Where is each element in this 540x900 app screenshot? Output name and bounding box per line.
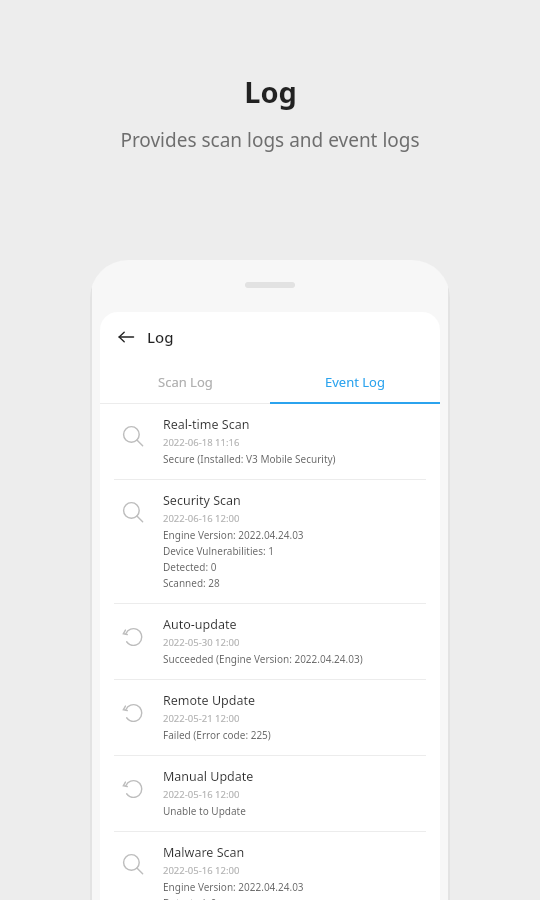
staticText: 2022-05-16 12:00 xyxy=(163,788,240,801)
staticText: Scanned: 28 xyxy=(163,576,220,590)
button[interactable]: Remote Update xyxy=(100,680,440,755)
staticText: Scan Log xyxy=(158,373,213,391)
staticText: Engine Version: 2022.04.24.03 xyxy=(163,528,304,542)
staticText: Device Vulnerabilities: 1 xyxy=(163,544,274,558)
staticText: Detected: 0 xyxy=(163,896,217,900)
staticText: 2022-05-30 12:00 xyxy=(163,636,240,649)
staticText: Auto-update xyxy=(163,616,237,633)
staticText: 2022-06-16 12:00 xyxy=(163,512,240,525)
staticText: Log xyxy=(147,327,174,347)
staticText: Detected: 0 xyxy=(163,560,217,574)
button[interactable]: Malware Scan xyxy=(100,832,440,900)
staticText: 2022-06-18 11:16 xyxy=(163,436,240,449)
staticText: Unable to Update xyxy=(163,804,246,818)
staticText: Provides scan logs and event logs xyxy=(120,127,420,153)
button[interactable]: Back xyxy=(108,319,144,355)
staticText: Engine Version: 2022.04.24.03 xyxy=(163,880,304,894)
staticText: Security Scan xyxy=(163,492,241,509)
staticText: Failed (Error code: 225) xyxy=(163,728,271,742)
staticText: Remote Update xyxy=(163,692,255,709)
staticText: 2022-05-16 12:00 xyxy=(163,864,240,877)
staticText: 2022-05-21 12:00 xyxy=(163,712,240,725)
button[interactable]: Real-time Scan xyxy=(100,404,440,479)
staticText: Succeeded (Engine Version: 2022.04.24.03… xyxy=(163,652,363,666)
staticText: Log xyxy=(244,72,297,111)
button[interactable]: Manual Update xyxy=(100,756,440,831)
button[interactable]: Auto-update xyxy=(100,604,440,679)
staticText: Secure (Installed: V3 Mobile Security) xyxy=(163,452,336,466)
staticText: Malware Scan xyxy=(163,844,245,861)
button[interactable]: Security Scan xyxy=(100,480,440,603)
staticText: Manual Update xyxy=(163,768,254,785)
button[interactable]: Event Log xyxy=(270,362,440,402)
button[interactable]: Scan Log xyxy=(100,362,270,402)
staticText: Real-time Scan xyxy=(163,416,250,433)
staticText: Event Log xyxy=(325,373,385,391)
